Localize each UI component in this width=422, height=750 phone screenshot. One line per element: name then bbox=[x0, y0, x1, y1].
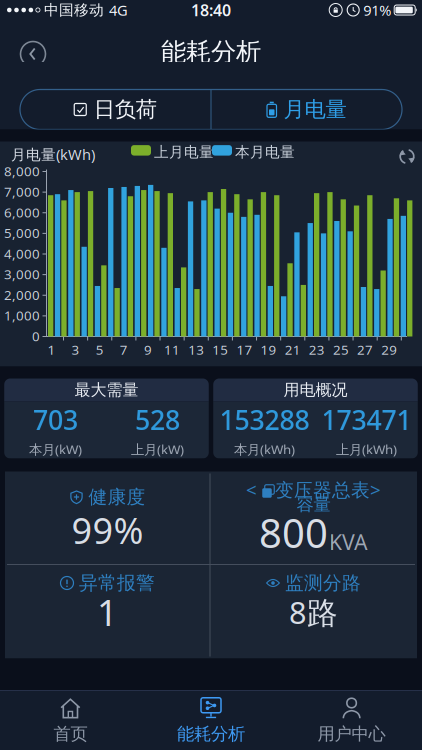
staticText: 本月(kWh) bbox=[234, 440, 295, 458]
staticText: 中国移动 bbox=[44, 1, 104, 19]
staticText: 用电概况 bbox=[283, 380, 347, 400]
staticText: 上月电量 bbox=[154, 143, 214, 161]
staticText: 上月(kW) bbox=[131, 440, 184, 458]
button[interactable]: 日负荷 bbox=[20, 89, 210, 129]
button[interactable]: < bbox=[210, 471, 417, 564]
staticText: 25 bbox=[333, 341, 349, 358]
staticText: 月电量 bbox=[283, 96, 346, 123]
staticText: 27 bbox=[357, 341, 373, 358]
staticText: 11 bbox=[164, 341, 180, 358]
staticText: 0 bbox=[32, 327, 40, 345]
staticText: 7,000 bbox=[4, 183, 40, 200]
staticText: 8,000 bbox=[4, 162, 40, 180]
staticText: 800 bbox=[259, 506, 328, 559]
button[interactable]: 健康度 bbox=[5, 471, 210, 564]
staticText: 2,000 bbox=[4, 286, 40, 304]
staticText: 29 bbox=[381, 341, 397, 358]
staticText: 13 bbox=[188, 341, 204, 358]
staticText: 173471 bbox=[321, 402, 411, 437]
staticText: 9 bbox=[144, 341, 152, 358]
staticText: 3 bbox=[71, 341, 79, 358]
staticText: 最大需量 bbox=[74, 380, 138, 400]
button[interactable]: Refresh bbox=[399, 148, 415, 164]
staticText: 5 bbox=[96, 341, 104, 358]
staticText: 本月(kW) bbox=[29, 440, 82, 458]
staticText: 用户中心 bbox=[318, 723, 386, 745]
staticText: 18:40 bbox=[191, 0, 231, 21]
staticText: 153288 bbox=[219, 402, 309, 437]
staticText: 本月电量 bbox=[235, 143, 295, 161]
staticText: 能耗分析 bbox=[161, 36, 261, 67]
staticText: 91% bbox=[363, 0, 391, 20]
staticText: 首页 bbox=[53, 723, 87, 745]
button[interactable]: 用户中心 bbox=[281, 691, 422, 750]
staticText: 5,000 bbox=[4, 224, 40, 242]
staticText: 3,000 bbox=[4, 265, 40, 283]
staticText: 8路 bbox=[289, 592, 338, 632]
staticText: 1 bbox=[97, 588, 118, 636]
staticText: 4,000 bbox=[4, 245, 40, 262]
staticText: 23 bbox=[309, 341, 325, 358]
staticText: 异常报警 bbox=[79, 571, 155, 594]
staticText: 1 bbox=[47, 341, 55, 358]
staticText: < bbox=[246, 477, 257, 502]
staticText: 能耗分析 bbox=[177, 723, 245, 745]
staticText: 15 bbox=[212, 341, 228, 358]
button[interactable]: 能耗分析 bbox=[141, 691, 281, 750]
staticText: 19 bbox=[261, 341, 277, 358]
staticText: 703 bbox=[33, 402, 78, 437]
button[interactable]: 首页 bbox=[0, 691, 141, 750]
staticText: 7 bbox=[120, 341, 128, 358]
staticText: 528 bbox=[135, 402, 180, 437]
button[interactable]: 月电量 bbox=[211, 89, 402, 129]
staticText: 日负荷 bbox=[94, 96, 157, 123]
staticText: 监测分路 bbox=[285, 571, 361, 594]
staticText: 21 bbox=[285, 341, 301, 358]
staticText: 月电量(kWh) bbox=[11, 144, 95, 164]
staticText: 健康度 bbox=[88, 485, 145, 508]
button[interactable]: 监测分路 bbox=[210, 564, 417, 658]
staticText: 99% bbox=[71, 506, 143, 554]
staticText: 变压器总表> bbox=[275, 477, 381, 502]
staticText: 6,000 bbox=[4, 203, 40, 221]
staticText: 上月(kWh) bbox=[336, 440, 397, 458]
button[interactable]: 异常报警 bbox=[5, 564, 210, 658]
staticText: 容量 bbox=[296, 494, 330, 515]
button[interactable]: Back bbox=[20, 41, 45, 66]
staticText: 4G bbox=[109, 0, 128, 20]
staticText: KVA bbox=[329, 528, 368, 556]
staticText: 17 bbox=[236, 341, 252, 358]
staticText: 1,000 bbox=[4, 306, 40, 324]
